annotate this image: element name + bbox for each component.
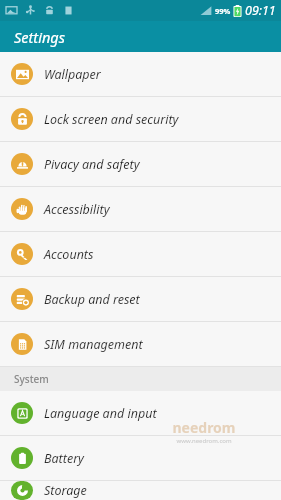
staticText: 99% — [215, 6, 231, 16]
staticText: Battery — [44, 450, 84, 467]
button[interactable]: SIM management — [0, 322, 281, 366]
staticText: www.needrom.com — [176, 437, 232, 445]
button[interactable]: Accessibility — [0, 187, 281, 231]
staticText: Language and input — [44, 405, 157, 422]
staticText: Settings — [14, 27, 65, 47]
staticText: 09:11 — [245, 2, 276, 19]
button[interactable]: Storage — [0, 481, 281, 500]
staticText: Accessibility — [44, 201, 110, 218]
staticText: needrom — [172, 418, 236, 437]
button[interactable]: Battery — [0, 436, 281, 480]
staticText: System — [14, 372, 49, 386]
button[interactable]: Language and input — [0, 391, 281, 435]
button[interactable]: Wallpaper — [0, 52, 281, 96]
staticText: Pivacy and safety — [44, 156, 140, 173]
staticText: Backup and reset — [44, 291, 140, 308]
button[interactable]: Lock screen and security — [0, 97, 281, 141]
staticText: Wallpaper — [44, 66, 101, 83]
staticText: Lock screen and security — [44, 111, 179, 128]
staticText: SIM management — [44, 336, 143, 353]
staticText: Accounts — [44, 246, 94, 263]
button[interactable]: Backup and reset — [0, 277, 281, 321]
staticText: Storage — [44, 482, 87, 499]
button[interactable]: Pivacy and safety — [0, 142, 281, 186]
button[interactable]: Accounts — [0, 232, 281, 276]
